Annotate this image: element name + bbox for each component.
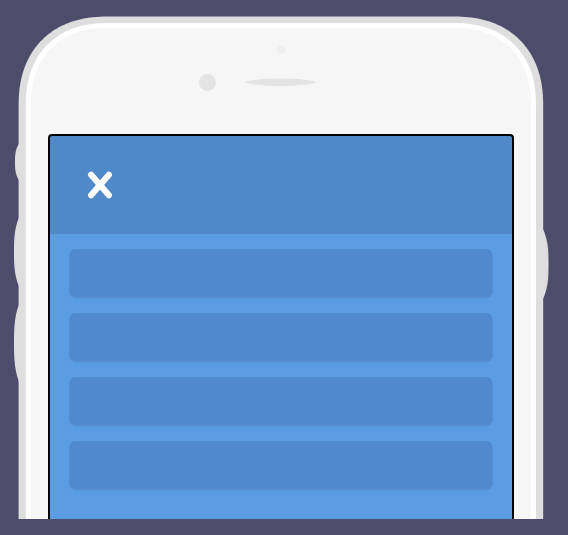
button[interactable]: Close [78,163,122,207]
